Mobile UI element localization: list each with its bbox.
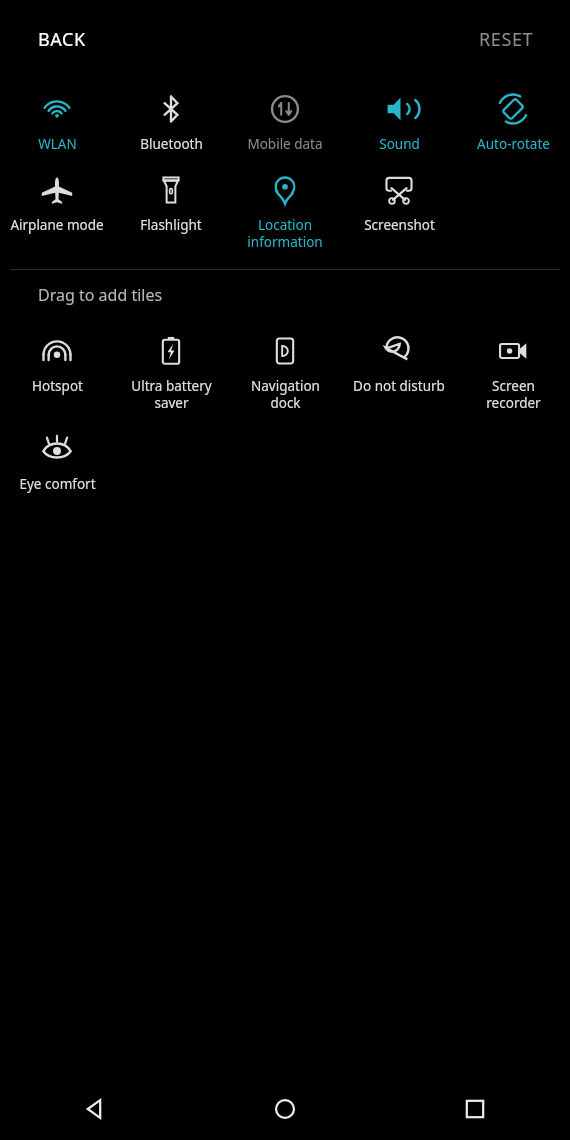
button[interactable]: Navigation dock <box>228 320 342 418</box>
staticText: Do not disturb <box>353 377 445 395</box>
button[interactable]: Hotspot <box>0 320 114 401</box>
button[interactable]: WLAN <box>0 78 114 159</box>
button[interactable]: Location information <box>228 159 342 257</box>
staticText: Ultra battery saver <box>131 377 212 412</box>
staticText: Mobile data <box>247 135 323 153</box>
staticText: Screenshot <box>364 216 435 234</box>
staticText: Screen recorder <box>486 377 541 412</box>
button[interactable]: BACK <box>0 17 100 62</box>
staticText: RESET <box>479 27 534 52</box>
staticText: Navigation dock <box>251 377 320 412</box>
button[interactable]: Bluetooth <box>114 78 228 159</box>
staticText: Flashlight <box>140 216 202 234</box>
staticText: Eye comfort <box>19 475 96 493</box>
button[interactable]: Back <box>0 1078 190 1140</box>
button[interactable]: Ultra battery saver <box>114 320 228 418</box>
button[interactable]: Screen recorder <box>456 320 570 418</box>
staticText: WLAN <box>38 135 77 153</box>
staticText: Sound <box>379 135 420 153</box>
button[interactable]: Flashlight <box>114 159 228 240</box>
staticText: Drag to add tiles <box>38 284 163 306</box>
button[interactable]: Screenshot <box>342 159 456 240</box>
staticText: Airplane mode <box>10 216 104 234</box>
staticText: Auto-rotate <box>477 135 550 153</box>
button[interactable]: Mobile data <box>228 78 342 159</box>
staticText: BACK <box>38 27 86 52</box>
button[interactable]: Eye comfort <box>0 418 114 499</box>
button[interactable]: Auto-rotate <box>456 78 570 159</box>
button[interactable]: Do not disturb <box>342 320 456 401</box>
button[interactable]: RESET <box>465 17 570 62</box>
staticText: Location information <box>247 216 323 251</box>
button[interactable]: Sound <box>342 78 456 159</box>
button[interactable]: Recents <box>380 1078 570 1140</box>
staticText: Bluetooth <box>140 135 203 153</box>
button[interactable]: Home <box>190 1078 380 1140</box>
staticText: Hotspot <box>32 377 83 395</box>
button[interactable]: Airplane mode <box>0 159 114 240</box>
